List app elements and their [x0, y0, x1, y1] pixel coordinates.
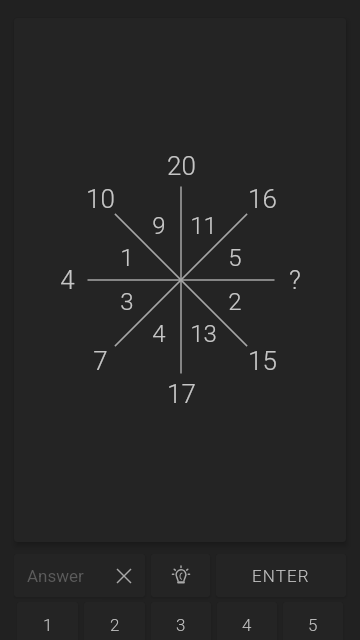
button[interactable]: Hint — [151, 554, 210, 597]
button[interactable]: Answer — [14, 554, 145, 597]
staticText: 1 — [43, 615, 53, 635]
staticText: 4 — [152, 320, 166, 348]
staticText: 3 — [176, 615, 186, 635]
button[interactable]: ENTER — [216, 554, 346, 597]
staticText: 1 — [120, 244, 134, 272]
staticText: 2 — [228, 288, 242, 316]
staticText: 3 — [120, 288, 134, 316]
staticText: 4 — [242, 615, 252, 635]
staticText: 4 — [60, 265, 75, 295]
staticText: 11 — [190, 212, 217, 240]
staticText: 7 — [93, 346, 108, 376]
staticText: ? — [289, 265, 301, 295]
button[interactable]: 3 — [151, 602, 211, 640]
staticText: 17 — [167, 379, 196, 409]
staticText: 13 — [190, 320, 217, 348]
staticText: 5 — [308, 615, 318, 635]
staticText: 9 — [152, 212, 166, 240]
button[interactable]: 1 — [17, 602, 78, 640]
staticText: 16 — [248, 184, 277, 214]
staticText: Answer — [27, 566, 84, 586]
staticText: 2 — [110, 615, 120, 635]
button[interactable]: 5 — [283, 602, 343, 640]
staticText: 10 — [86, 184, 115, 214]
staticText: ENTER — [252, 566, 310, 586]
staticText: 20 — [167, 151, 196, 181]
button[interactable]: Clear answer — [115, 567, 133, 585]
staticText: 15 — [248, 346, 277, 376]
button[interactable]: 4 — [217, 602, 277, 640]
button[interactable]: 2 — [84, 602, 145, 640]
staticText: 5 — [228, 244, 242, 272]
